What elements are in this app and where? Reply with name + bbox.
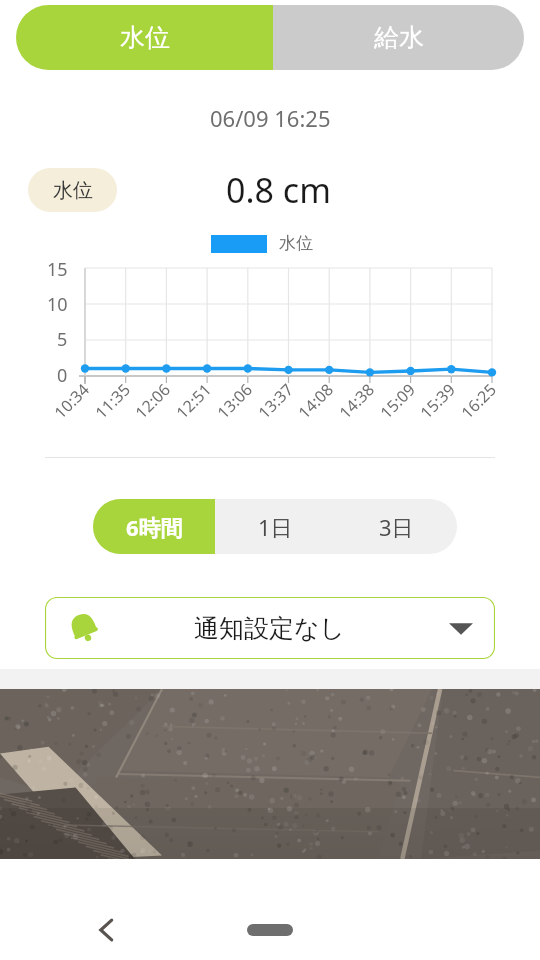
staticText: 12:06: [130, 379, 175, 423]
staticText: 0: [57, 363, 68, 388]
staticText: 10:34: [49, 379, 94, 423]
staticText: 水位: [120, 22, 170, 53]
staticText: 13:37: [253, 379, 298, 423]
button[interactable]: Back: [85, 908, 129, 952]
staticText: 3日: [379, 512, 414, 542]
staticText: 15:09: [375, 379, 420, 423]
button[interactable]: 通知設定なし: [45, 597, 495, 659]
staticText: 06/09 16:25: [210, 103, 331, 133]
button[interactable]: 6時間: [93, 499, 215, 554]
staticText: 給水: [374, 22, 424, 53]
staticText: 5: [57, 327, 68, 352]
staticText: 1日: [258, 512, 293, 542]
staticText: 12:51: [171, 379, 216, 423]
staticText: 通知設定なし: [194, 613, 346, 644]
button[interactable]: 給水: [273, 5, 524, 70]
staticText: 水位: [279, 233, 313, 254]
staticText: 0.8 cm: [226, 167, 331, 213]
button[interactable]: 3日: [336, 499, 457, 554]
staticText: 水位: [53, 178, 93, 203]
staticText: 13:06: [212, 379, 257, 423]
button[interactable]: 1日: [215, 499, 336, 554]
staticText: 6時間: [126, 512, 183, 542]
button[interactable]: 水位: [28, 168, 117, 212]
staticText: 10: [47, 292, 68, 317]
staticText: 15: [47, 257, 68, 282]
button[interactable]: 水位: [16, 5, 273, 70]
staticText: 14:38: [334, 379, 379, 423]
button[interactable]: Home: [240, 914, 300, 946]
staticText: 16:25: [456, 379, 501, 423]
staticText: 11:35: [90, 379, 135, 423]
staticText: 15:39: [415, 379, 460, 423]
staticText: 14:08: [293, 379, 338, 423]
